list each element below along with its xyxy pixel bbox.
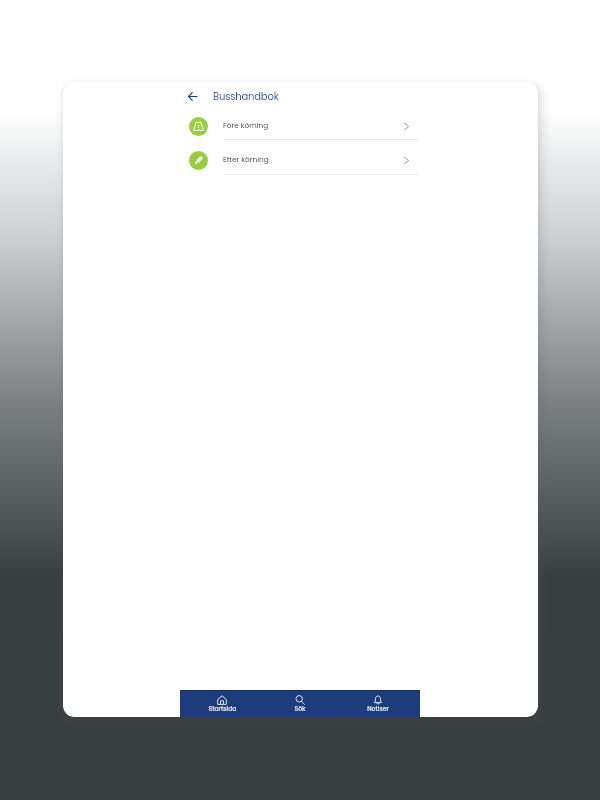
button[interactable]: Startsida bbox=[183, 691, 261, 717]
staticText: Sök bbox=[294, 705, 306, 714]
button[interactable]: Notiser bbox=[339, 691, 417, 717]
staticText: Notiser bbox=[367, 705, 389, 714]
button[interactable]: Före körning bbox=[63, 109, 538, 143]
button[interactable]: Back bbox=[182, 86, 202, 106]
staticText: Efter körning bbox=[223, 154, 269, 164]
staticText: Startsida bbox=[208, 705, 237, 714]
button[interactable]: Efter körning bbox=[63, 143, 538, 177]
staticText: Busshandbok bbox=[213, 89, 279, 103]
button[interactable]: Sök bbox=[261, 691, 339, 717]
staticText: Före körning bbox=[223, 120, 269, 130]
